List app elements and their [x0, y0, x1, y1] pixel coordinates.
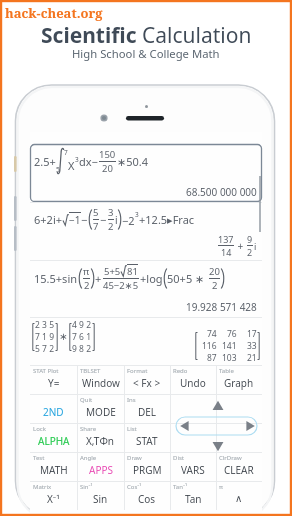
button[interactable]: Share: [77, 423, 124, 452]
staticText: 103: [222, 352, 237, 364]
staticText: −: [100, 212, 107, 227]
staticText: 15.5+sin: [34, 271, 78, 286]
staticText: 45−2∗5: [103, 279, 139, 292]
staticText: ClrDraw: [219, 454, 242, 462]
button[interactable]: [170, 423, 216, 452]
staticText: 137: [218, 233, 234, 245]
staticText: 7 6 1: [72, 331, 92, 343]
staticText: Window: [82, 376, 120, 390]
staticText: Calculation: [142, 21, 252, 50]
staticText: dx−: [79, 154, 98, 169]
button[interactable]: Draw: [124, 452, 170, 481]
staticText: ∗50.4: [117, 154, 149, 169]
staticText: < Fx >: [133, 376, 161, 390]
staticText: Ins: [127, 396, 136, 404]
button[interactable]: [216, 394, 262, 423]
staticText: 9: [247, 233, 253, 245]
staticText: 21: [247, 352, 257, 364]
staticText: 33: [247, 340, 257, 352]
staticText: 87: [207, 352, 217, 364]
staticText: ∧: [235, 493, 243, 505]
staticText: Sin: [93, 492, 108, 506]
staticText: STAT: [136, 434, 158, 448]
button[interactable]: Test: [30, 452, 77, 481]
staticText: 4 9 2: [72, 319, 92, 331]
staticText: 7 1 9: [35, 331, 55, 343]
staticText: 50+5 ∗: [167, 271, 208, 286]
staticText: X⁻¹: [47, 492, 60, 506]
staticText: 68.500 000 000: [186, 185, 257, 199]
button[interactable]: Lock: [30, 423, 77, 452]
staticText: 3: [108, 206, 114, 219]
staticText: Share: [80, 425, 97, 433]
staticText: −2: [122, 213, 135, 228]
staticText: Table: [219, 367, 234, 375]
staticText: 14: [221, 246, 232, 258]
staticText: Angle: [80, 454, 97, 462]
staticText: DEL: [138, 405, 157, 419]
staticText: Format: [127, 367, 148, 375]
staticText: Cos⁻¹: [127, 483, 142, 491]
staticText: 3: [135, 210, 139, 219]
button[interactable]: Cos⁻¹: [124, 481, 170, 510]
staticText: CLEAR: [224, 463, 254, 477]
staticText: 9 8 2: [72, 343, 92, 355]
staticText: 81: [127, 265, 138, 278]
button[interactable]: [30, 365, 262, 516]
button[interactable]: π: [216, 481, 262, 510]
button[interactable]: Sin⁻¹: [77, 481, 124, 510]
staticText: Undo: [180, 376, 206, 390]
staticText: Tan⁻¹: [173, 483, 188, 491]
button[interactable]: Matrix: [30, 481, 77, 510]
button[interactable]: 2ND: [30, 394, 77, 423]
button[interactable]: List: [124, 423, 170, 452]
button[interactable]: Ins: [124, 394, 170, 423]
button[interactable]: [170, 394, 216, 423]
staticText: 2ND: [43, 405, 64, 419]
staticText: 20: [209, 265, 220, 278]
staticText: 76: [227, 328, 237, 340]
staticText: ∗: [59, 331, 68, 343]
staticText: −1: [69, 213, 81, 227]
staticText: +: [235, 239, 246, 253]
button[interactable]: Dist: [170, 452, 216, 481]
staticText: −: [81, 212, 88, 227]
staticText: 5: [56, 165, 60, 174]
button[interactable]: ClrDraw: [216, 452, 262, 481]
button[interactable]: Angle: [77, 452, 124, 481]
staticText: List: [127, 425, 137, 433]
staticText: Draw: [127, 454, 142, 462]
button[interactable]: Format: [124, 365, 170, 394]
staticText: TBLSET: [80, 367, 101, 375]
button[interactable]: TBLSET: [77, 365, 124, 394]
staticText: Lock: [33, 425, 46, 433]
staticText: MODE: [86, 405, 116, 419]
staticText: 2: [108, 220, 114, 233]
staticText: 141: [222, 340, 237, 352]
button[interactable]: Quit: [77, 394, 124, 423]
staticText: Test: [33, 454, 45, 462]
button[interactable]: [216, 423, 262, 452]
staticText: π: [83, 265, 90, 278]
staticText: i: [115, 213, 118, 227]
staticText: +: [95, 271, 102, 286]
staticText: i: [254, 240, 257, 252]
button[interactable]: Redo: [170, 365, 216, 394]
staticText: VARS: [181, 463, 205, 477]
staticText: APPS: [89, 463, 113, 477]
staticText: +log: [140, 271, 163, 286]
staticText: Y=: [48, 376, 60, 390]
staticText: 2: [84, 279, 90, 292]
staticText: 19.928 571 428: [186, 300, 257, 314]
staticText: Quit: [80, 396, 93, 404]
staticText: STAT Plot: [33, 367, 59, 375]
staticText: X: [68, 158, 75, 173]
staticText: 7: [93, 220, 99, 233]
staticText: Redo: [173, 367, 188, 375]
staticText: 7: [64, 148, 68, 157]
button[interactable]: STAT Plot: [30, 365, 77, 394]
button[interactable]: Tan⁻¹: [170, 481, 216, 510]
staticText: ALPHA: [38, 434, 70, 448]
button[interactable]: Table: [216, 365, 262, 394]
staticText: Matrix: [33, 483, 52, 491]
